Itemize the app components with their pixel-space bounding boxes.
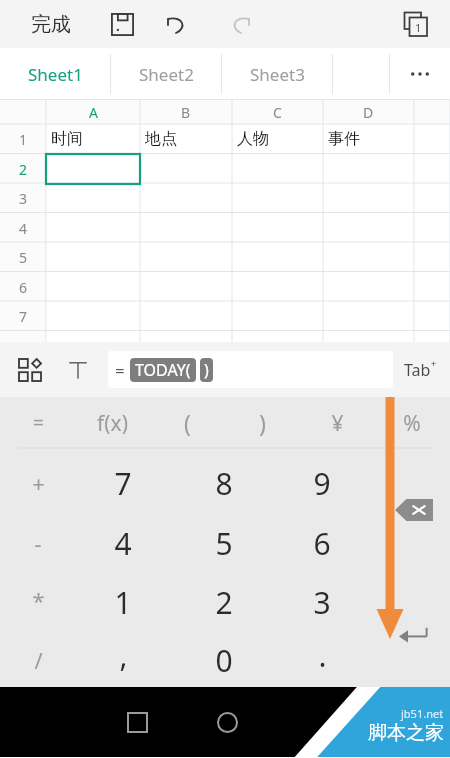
staticText: 脚本之家	[368, 721, 444, 745]
button[interactable]: 1	[0, 124, 46, 154]
staticText: 3	[313, 582, 331, 623]
button[interactable]: 7	[87, 457, 159, 509]
button[interactable]: Redo	[218, 0, 264, 48]
button[interactable]: Save	[100, 0, 144, 48]
staticText: 时间	[51, 129, 83, 149]
button[interactable]: 7	[0, 301, 46, 331]
button[interactable]: 3	[0, 183, 46, 213]
staticText: 地点	[145, 129, 177, 149]
button[interactable]: (	[151, 396, 223, 448]
button[interactable]: Sheet2	[111, 48, 221, 100]
button[interactable]: D	[323, 100, 414, 124]
staticText: 8	[215, 463, 233, 504]
staticText: C	[273, 103, 282, 122]
button[interactable]: +	[2, 457, 74, 509]
button[interactable]: 6	[286, 517, 358, 569]
button[interactable]: )	[226, 396, 298, 448]
button[interactable]: 8	[0, 331, 46, 361]
staticText: Sheet3	[250, 63, 305, 86]
staticText: 9	[313, 463, 331, 504]
button[interactable]: 1	[87, 576, 159, 628]
button[interactable]: 4	[0, 213, 46, 243]
staticText: f(x)	[97, 409, 128, 438]
staticText: A	[89, 103, 98, 122]
staticText: (	[184, 407, 191, 438]
staticText: 5	[19, 248, 28, 267]
button[interactable]: Sheet3	[222, 48, 332, 100]
staticText: *	[32, 585, 45, 615]
button[interactable]: -	[2, 517, 74, 569]
button[interactable]: 4	[87, 517, 159, 569]
staticText: 2	[215, 582, 233, 623]
staticText: D	[363, 103, 374, 122]
button[interactable]: Sheet1	[0, 48, 110, 100]
button[interactable]: %	[376, 397, 448, 449]
button[interactable]: Insert object	[8, 342, 52, 397]
button[interactable]: 人物	[237, 124, 323, 154]
button[interactable]: ,	[87, 629, 159, 681]
button[interactable]: 完成	[12, 0, 90, 48]
button[interactable]: 地点	[145, 124, 232, 154]
button[interactable]: =	[108, 351, 393, 388]
staticText: Sheet1	[28, 63, 83, 86]
button[interactable]: Recents	[108, 687, 166, 757]
button[interactable]: Tab	[394, 342, 446, 397]
button[interactable]: Home	[198, 687, 256, 757]
staticText: =	[33, 410, 44, 436]
staticText: 1	[415, 20, 422, 35]
button[interactable]: 8	[188, 457, 260, 509]
button[interactable]: Sheets	[392, 1, 438, 47]
staticText: 8	[19, 337, 28, 356]
staticText: %	[403, 409, 421, 438]
button[interactable]: Undo	[152, 0, 198, 48]
staticText: 7	[19, 307, 28, 326]
button[interactable]: 5	[0, 242, 46, 272]
staticText: 6	[19, 278, 28, 297]
staticText: 7	[114, 463, 132, 504]
button[interactable]: 5	[188, 517, 260, 569]
staticText: 3	[19, 189, 28, 208]
button[interactable]: .	[286, 629, 358, 681]
staticText: /	[34, 645, 43, 675]
button[interactable]: 6	[0, 272, 46, 302]
button[interactable]: A	[46, 100, 140, 124]
staticText: .	[318, 635, 327, 676]
staticText: ¥	[331, 409, 344, 438]
button[interactable]: ¥	[301, 397, 373, 449]
button[interactable]: =	[2, 397, 74, 449]
staticText: +	[431, 357, 437, 369]
staticText: )	[259, 407, 266, 438]
staticText: =	[115, 359, 125, 382]
button[interactable]: 0	[188, 634, 260, 686]
staticText: 4	[19, 219, 28, 238]
staticText: Sheet2	[139, 63, 194, 86]
staticText: 6	[313, 523, 331, 564]
staticText: 1	[114, 582, 132, 623]
staticText: 0	[215, 640, 233, 681]
button[interactable]: More options	[390, 48, 450, 100]
button[interactable]: 2	[0, 154, 46, 184]
button[interactable]: 3	[286, 576, 358, 628]
staticText: 4	[114, 523, 132, 564]
button[interactable]: 9	[286, 457, 358, 509]
button[interactable]: 2	[188, 576, 260, 628]
staticText: ,	[119, 635, 128, 676]
button[interactable]: Text format	[58, 342, 98, 397]
staticText: jb51.net	[401, 706, 444, 721]
button[interactable]	[46, 154, 140, 184]
staticText: 人物	[237, 129, 269, 149]
staticText: 2	[19, 160, 28, 179]
button[interactable]: C	[232, 100, 323, 124]
button[interactable]: Backspace	[390, 495, 438, 525]
staticText: 事件	[328, 129, 360, 149]
button[interactable]: *	[2, 574, 74, 626]
staticText: Tab	[404, 359, 431, 381]
button[interactable]: B	[140, 100, 232, 124]
staticText: -	[34, 528, 42, 558]
button[interactable]: /	[2, 634, 74, 686]
button[interactable]: 事件	[328, 124, 414, 154]
staticText: 完成	[31, 12, 71, 37]
button[interactable]: Enter	[392, 619, 436, 651]
button[interactable]: 时间	[51, 124, 140, 154]
button[interactable]: f(x)	[76, 397, 148, 449]
